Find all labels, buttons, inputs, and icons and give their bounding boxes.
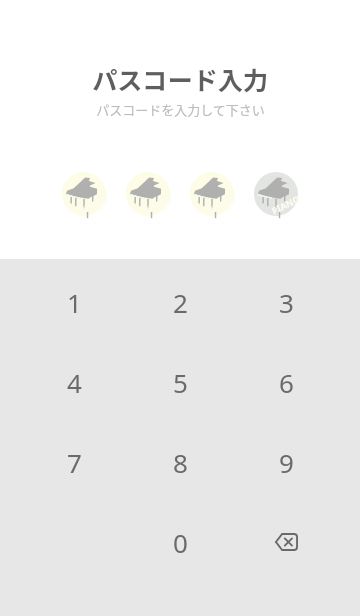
- other: Delete: [269, 525, 303, 559]
- staticText: 5: [173, 365, 188, 400]
- staticText: 1: [67, 285, 82, 320]
- staticText: 7: [67, 445, 82, 480]
- button[interactable]: 8: [127, 422, 233, 502]
- button[interactable]: 5: [127, 342, 233, 422]
- button[interactable]: 6: [233, 342, 339, 422]
- button[interactable]: Delete: [233, 502, 339, 582]
- staticText: パスコードを入力して下さい: [96, 100, 265, 119]
- button[interactable]: 2: [127, 262, 233, 342]
- button[interactable]: 7: [21, 422, 127, 502]
- staticText: 6: [279, 365, 294, 400]
- button[interactable]: 9: [233, 422, 339, 502]
- staticText: 0: [173, 525, 188, 560]
- staticText: 3: [279, 285, 294, 320]
- staticText: 2: [173, 285, 188, 320]
- button[interactable]: 3: [233, 262, 339, 342]
- button[interactable]: 0: [127, 502, 233, 582]
- staticText: 8: [173, 445, 188, 480]
- button[interactable]: 1: [21, 262, 127, 342]
- staticText: 9: [279, 445, 294, 480]
- staticText: 4: [67, 365, 82, 400]
- button[interactable]: 4: [21, 342, 127, 422]
- staticText: パスコード入力: [92, 61, 268, 97]
